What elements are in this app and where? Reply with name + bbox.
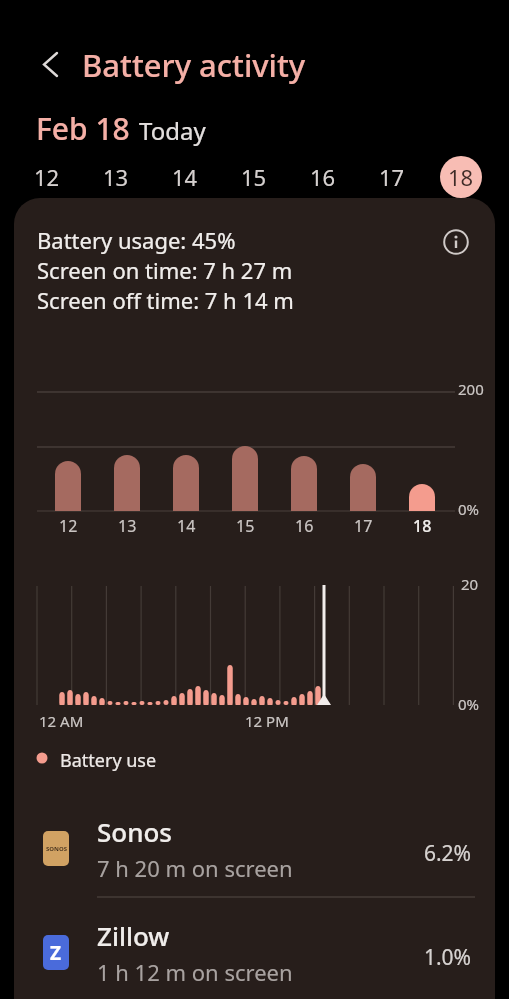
staticText: SONOS: [46, 845, 67, 853]
staticText: 0%: [458, 694, 480, 714]
staticText: 17: [354, 515, 373, 537]
staticText: Zillow: [97, 918, 170, 953]
staticText: 13: [103, 162, 129, 192]
button[interactable]: SONOS: [14, 810, 495, 897]
staticText: 15: [236, 515, 255, 537]
staticText: 1 h 12 m on screen: [97, 957, 293, 987]
staticText: 12 PM: [245, 711, 289, 731]
staticText: 12: [34, 162, 60, 192]
staticText: 1.0%: [364, 943, 471, 972]
staticText: Z: [50, 940, 62, 966]
button[interactable]: [30, 44, 70, 84]
staticText: 12: [59, 515, 78, 537]
staticText: 16: [295, 515, 314, 537]
staticText: 0%: [458, 499, 480, 519]
staticText: Today: [139, 114, 206, 147]
staticText: 17: [379, 162, 405, 192]
staticText: 18: [413, 515, 432, 537]
button[interactable]: Z: [14, 897, 495, 999]
button[interactable]: 17: [371, 156, 413, 198]
button[interactable]: 15: [233, 156, 275, 198]
button[interactable]: 18: [440, 156, 482, 198]
staticText: Screen on time: 7 h 27 m: [37, 255, 293, 285]
staticText: 16: [310, 162, 336, 192]
button[interactable]: 13: [95, 156, 137, 198]
button[interactable]: 14: [164, 156, 206, 198]
staticText: Battery usage: 45%: [37, 225, 236, 255]
staticText: 20: [461, 574, 479, 594]
staticText: 15: [241, 162, 267, 192]
staticText: Sonos: [97, 814, 173, 849]
button[interactable]: [438, 224, 474, 260]
staticText: 14: [172, 162, 198, 192]
staticText: Feb 18: [36, 108, 130, 149]
staticText: Screen off time: 7 h 14 m: [37, 285, 294, 315]
staticText: 200: [458, 379, 484, 399]
staticText: 14: [177, 515, 196, 537]
staticText: 13: [118, 515, 137, 537]
button[interactable]: 12: [26, 156, 68, 198]
staticText: 6.2%: [364, 839, 471, 868]
staticText: Battery activity: [82, 44, 306, 86]
button[interactable]: 16: [302, 156, 344, 198]
staticText: 12 AM: [39, 711, 84, 731]
staticText: Battery use: [60, 748, 157, 773]
staticText: 18: [448, 162, 474, 192]
staticText: 7 h 20 m on screen: [97, 853, 293, 883]
